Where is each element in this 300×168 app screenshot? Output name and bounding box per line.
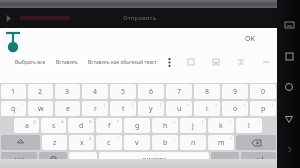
button[interactable]: Выбрать все [15, 55, 46, 70]
button[interactable]: q [1, 101, 26, 116]
staticText: 0 [261, 87, 266, 97]
button[interactable]: z [42, 135, 67, 150]
button[interactable]: o [222, 101, 248, 116]
button[interactable]: l [236, 118, 262, 133]
button[interactable]: e [55, 101, 80, 116]
button[interactable]: 6 [138, 84, 164, 99]
staticText: n [191, 138, 196, 148]
staticText: Отправить [123, 14, 157, 22]
button[interactable]: Shift [1, 135, 40, 150]
button[interactable]: , [69, 152, 97, 167]
button[interactable]: f [96, 118, 122, 133]
button[interactable]: Вставить как обычный текст [88, 55, 157, 70]
staticText: - [76, 102, 78, 107]
button[interactable]: 9 [222, 84, 248, 99]
staticText: s [52, 121, 56, 131]
staticText: ] [160, 102, 162, 107]
button[interactable]: Tool 1 [178, 56, 203, 68]
staticText: - [146, 119, 148, 124]
staticText: 3 [65, 87, 70, 97]
button[interactable]: p [250, 101, 276, 116]
button[interactable]: 7 [166, 84, 192, 99]
button[interactable]: Tool 3 [228, 56, 253, 68]
button[interactable]: Emoji [39, 152, 67, 167]
button[interactable]: 3 [55, 84, 80, 99]
button[interactable]: v [124, 135, 150, 150]
button[interactable]: x [69, 135, 94, 150]
button[interactable]: i [194, 101, 220, 116]
staticText: Выбрать все [15, 59, 46, 66]
staticText: ; [174, 136, 176, 141]
staticText: w [38, 104, 44, 114]
button[interactable]: Tool 2 [203, 56, 228, 68]
staticText: . [93, 153, 95, 158]
button[interactable]: 123 [1, 152, 37, 167]
button[interactable]: Expand [282, 142, 296, 156]
button[interactable]: 0 [250, 84, 276, 99]
staticText: k [219, 121, 223, 131]
button[interactable]: OK [238, 32, 262, 45]
staticText: y [149, 104, 153, 114]
button[interactable]: 5 [110, 84, 136, 99]
staticText: e [66, 104, 70, 114]
button[interactable]: 8 [194, 84, 220, 99]
button[interactable]: Вставить [56, 55, 78, 70]
button[interactable]: Tool 4 [253, 56, 278, 68]
button[interactable]: a [14, 118, 39, 133]
staticText: r [94, 104, 97, 114]
staticText: ) [230, 119, 232, 124]
button[interactable]: r [82, 101, 108, 116]
button[interactable]: m [208, 135, 234, 150]
staticText: Вставить как обычный текст [88, 59, 157, 66]
staticText: 4 [93, 87, 98, 97]
staticText: g [135, 121, 140, 131]
staticText: b [163, 138, 168, 148]
button[interactable]: . [211, 152, 239, 167]
button[interactable]: 1 [1, 84, 26, 99]
button[interactable]: g [124, 118, 150, 133]
staticText: m [218, 138, 225, 148]
button[interactable]: Backspace [236, 135, 276, 150]
button[interactable]: c [96, 135, 122, 150]
button[interactable]: Home [281, 79, 297, 95]
button[interactable]: Back [281, 111, 297, 127]
staticText: + [173, 119, 176, 124]
staticText: z [53, 138, 57, 148]
button[interactable]: 2 [28, 84, 53, 99]
staticText: v [135, 138, 139, 148]
button[interactable]: 4 [82, 84, 108, 99]
staticText: x [80, 138, 84, 148]
staticText: @ [33, 119, 37, 124]
staticText: 2 [38, 87, 43, 97]
button[interactable]: More options [162, 55, 176, 70]
staticText: { [244, 102, 246, 107]
staticText: d [79, 121, 84, 131]
staticText: Вставить [56, 59, 78, 66]
button[interactable]: t [110, 101, 136, 116]
button[interactable]: n [180, 135, 206, 150]
button[interactable]: u [166, 101, 192, 116]
button[interactable]: d [68, 118, 94, 133]
staticText: ` [49, 102, 51, 107]
button[interactable]: w [28, 101, 53, 116]
button[interactable]: Enter [241, 152, 276, 167]
button[interactable]: Hide keyboard [282, 18, 296, 32]
button[interactable]: s [41, 118, 66, 133]
button[interactable]: QWERTY [99, 152, 209, 167]
button[interactable]: k [208, 118, 234, 133]
staticText: q [11, 104, 16, 114]
staticText: : [146, 136, 148, 141]
staticText: ( [202, 119, 204, 124]
button[interactable]: j [180, 118, 206, 133]
button[interactable]: Recents [281, 48, 297, 64]
staticText: t [122, 104, 125, 114]
staticText: _ [63, 136, 65, 141]
staticText: * [117, 119, 120, 124]
button[interactable]: y [138, 101, 164, 116]
staticText: c [107, 138, 111, 148]
button[interactable]: b [152, 135, 178, 150]
staticText: " [118, 136, 120, 141]
staticText: [ [132, 102, 134, 107]
staticText: " [258, 119, 260, 124]
button[interactable]: h [152, 118, 178, 133]
